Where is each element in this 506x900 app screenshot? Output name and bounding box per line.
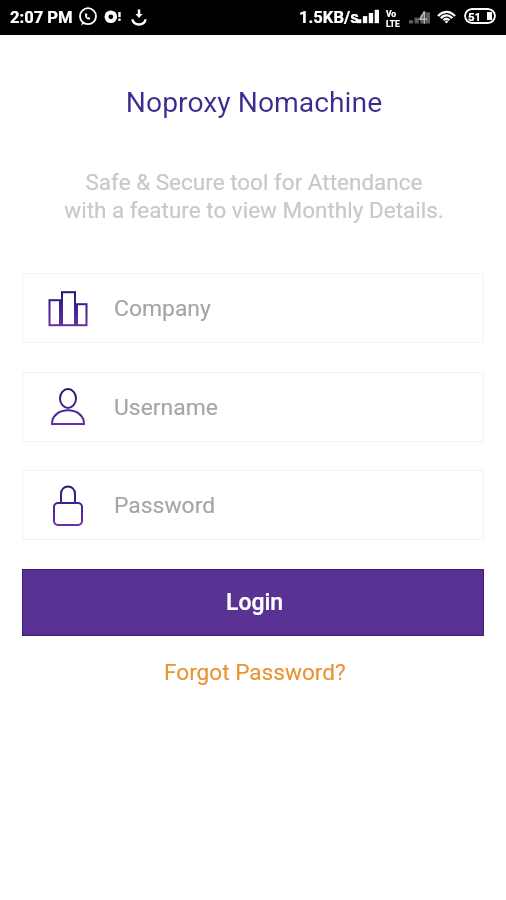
other: Company field xyxy=(48,288,88,328)
staticText: LTE xyxy=(386,19,400,29)
staticText: 1.5KB/s xyxy=(299,8,359,27)
staticText: Login xyxy=(226,589,284,616)
button[interactable]: Forgot Password? xyxy=(156,656,354,688)
staticText: Password xyxy=(114,492,216,519)
other: Password field xyxy=(48,485,88,525)
staticText: Vo xyxy=(386,9,397,19)
button[interactable]: Password field xyxy=(22,470,484,540)
staticText: Company xyxy=(114,295,211,322)
button[interactable]: Company field xyxy=(22,273,484,343)
staticText: Username xyxy=(114,394,218,421)
staticText: 2:07 PM xyxy=(10,8,73,27)
staticText: Safe & Secure tool for Attendance with a… xyxy=(1,169,506,224)
button[interactable]: Login xyxy=(22,569,484,636)
staticText: Noproxy Nomachine xyxy=(1,86,506,119)
button[interactable]: Username field xyxy=(22,372,484,442)
staticText: 51 xyxy=(468,10,482,23)
other: Username field xyxy=(48,387,88,427)
